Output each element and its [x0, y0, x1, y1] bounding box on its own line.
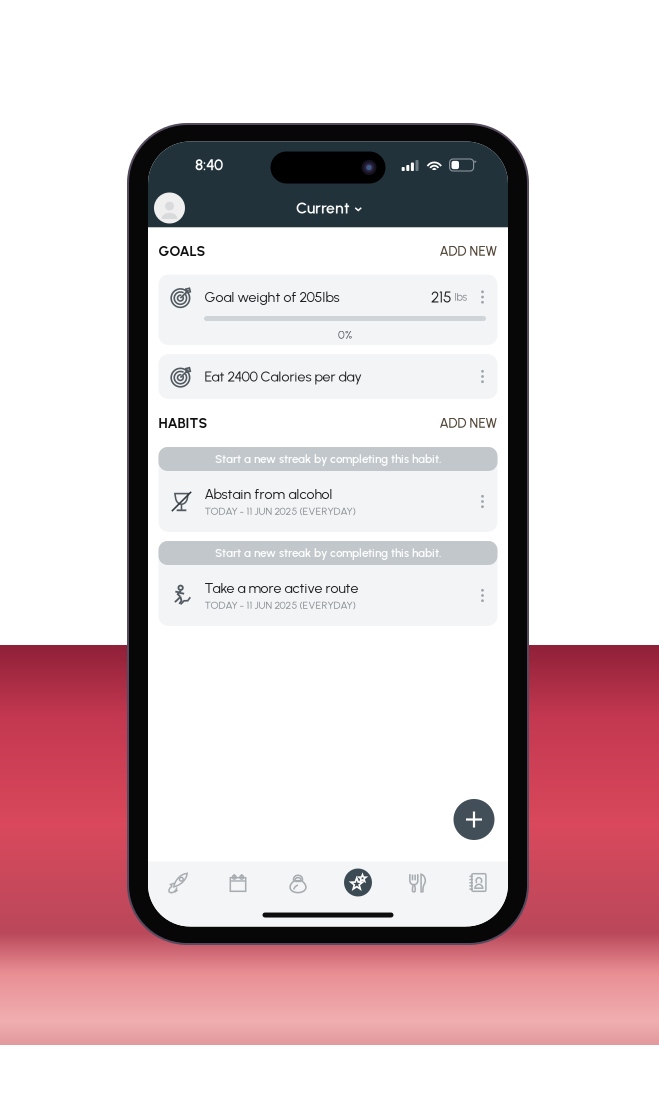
staticText: 215	[431, 288, 451, 306]
button[interactable]: Contacts	[448, 864, 508, 900]
staticText: Eat 2400 Calories per day	[204, 368, 361, 385]
staticText: TODAY - 11 JUN 2025 (EVERYDAY)	[204, 599, 355, 611]
button[interactable]: Goal weight of 205lbs	[158, 274, 497, 345]
staticText: TODAY - 11 JUN 2025 (EVERYDAY)	[204, 505, 355, 517]
button[interactable]: Workouts	[268, 864, 328, 900]
button[interactable]: Goals	[148, 864, 208, 900]
button[interactable]: Current	[289, 195, 367, 221]
staticText: ADD NEW	[439, 415, 497, 431]
staticText: Goal weight of 205lbs	[204, 289, 339, 306]
staticText: Take a more active route	[204, 579, 358, 596]
staticText: Start a new streak by completing this ha…	[215, 546, 441, 560]
staticText: 8:40	[195, 156, 223, 174]
button[interactable]: Nutrition	[388, 864, 448, 900]
staticText: Abstain from alcohol	[204, 485, 332, 502]
button[interactable]: ADD NEW	[427, 411, 497, 435]
staticText: Start a new streak by completing this ha…	[215, 452, 441, 466]
button[interactable]: Start a new streak by completing this ha…	[158, 447, 497, 532]
staticText: HABITS	[158, 415, 207, 431]
button[interactable]: Calendar	[208, 864, 268, 900]
staticText: lbs	[454, 291, 467, 303]
staticText: GOALS	[158, 243, 205, 259]
staticText: ADD NEW	[439, 243, 497, 259]
button[interactable]: Add	[449, 795, 498, 844]
button[interactable]: Start a new streak by completing this ha…	[158, 541, 497, 626]
staticText: 0%	[338, 328, 352, 341]
button[interactable]: Eat 2400 Calories per day	[158, 354, 497, 399]
button[interactable]: ADD NEW	[427, 239, 497, 263]
button[interactable]: Profile	[154, 192, 185, 223]
button[interactable]: Habits	[328, 864, 388, 900]
staticText: Current	[296, 199, 350, 217]
